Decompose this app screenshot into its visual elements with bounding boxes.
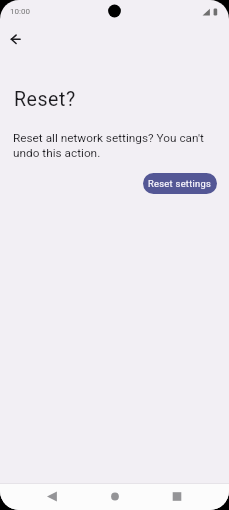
button[interactable]: Home: [99, 483, 131, 510]
staticText: Reset?: [14, 88, 76, 111]
staticText: 10:00: [10, 7, 30, 16]
button[interactable]: Reset settings: [143, 173, 217, 194]
staticText: Reset all network settings? You can't un…: [13, 131, 213, 160]
staticText: Reset settings: [148, 178, 212, 189]
button[interactable]: Navigate up: [0, 26, 32, 58]
button[interactable]: Recent apps: [161, 483, 193, 510]
button[interactable]: Back: [36, 483, 68, 510]
